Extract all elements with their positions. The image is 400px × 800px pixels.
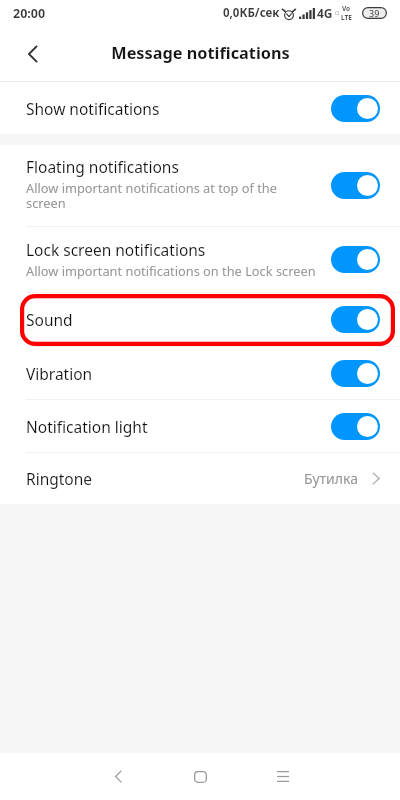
button[interactable]: Home [176, 753, 224, 800]
button[interactable]: Back [0, 26, 65, 81]
staticText: Vibration [26, 363, 93, 384]
staticText: Message notifications [111, 42, 290, 64]
button[interactable]: Toggle [331, 172, 380, 199]
button[interactable]: Recent apps [259, 753, 307, 800]
button[interactable]: Toggle [331, 246, 380, 273]
staticText: Lock screen notifications [26, 239, 206, 260]
button[interactable]: Toggle [331, 360, 380, 387]
button[interactable]: Vibration [0, 347, 400, 399]
staticText: Sound [26, 309, 73, 330]
staticText: Floating notifications [26, 156, 179, 177]
staticText: Бутилка [304, 469, 358, 488]
staticText: 0,0КБ/сек [223, 5, 280, 21]
button[interactable]: Floating notifications [0, 145, 400, 226]
button[interactable]: Toggle [331, 306, 380, 333]
button[interactable]: Toggle [331, 95, 380, 122]
staticText: 20:00 [13, 5, 46, 22]
staticText: Allow important notifications on the Loc… [26, 262, 316, 279]
staticText: Notification light [26, 416, 148, 437]
button[interactable]: Back [94, 753, 142, 800]
staticText: LTE [341, 13, 352, 22]
staticText: 4G [317, 5, 333, 21]
button[interactable]: Sound [0, 293, 400, 346]
staticText: Show notifications [26, 98, 160, 119]
button[interactable]: Lock screen notifications [0, 227, 400, 292]
button[interactable]: Ringtone [0, 453, 400, 504]
button[interactable]: Toggle [331, 413, 380, 440]
staticText: 39 [369, 7, 380, 19]
staticText: ▫ [335, 9, 340, 17]
staticText: Ringtone [26, 468, 93, 489]
staticText: Allow important notifications at top of … [26, 179, 317, 212]
button[interactable]: Show notifications [0, 82, 400, 134]
staticText: Vo [342, 4, 351, 13]
button[interactable]: Notification light [0, 400, 400, 452]
